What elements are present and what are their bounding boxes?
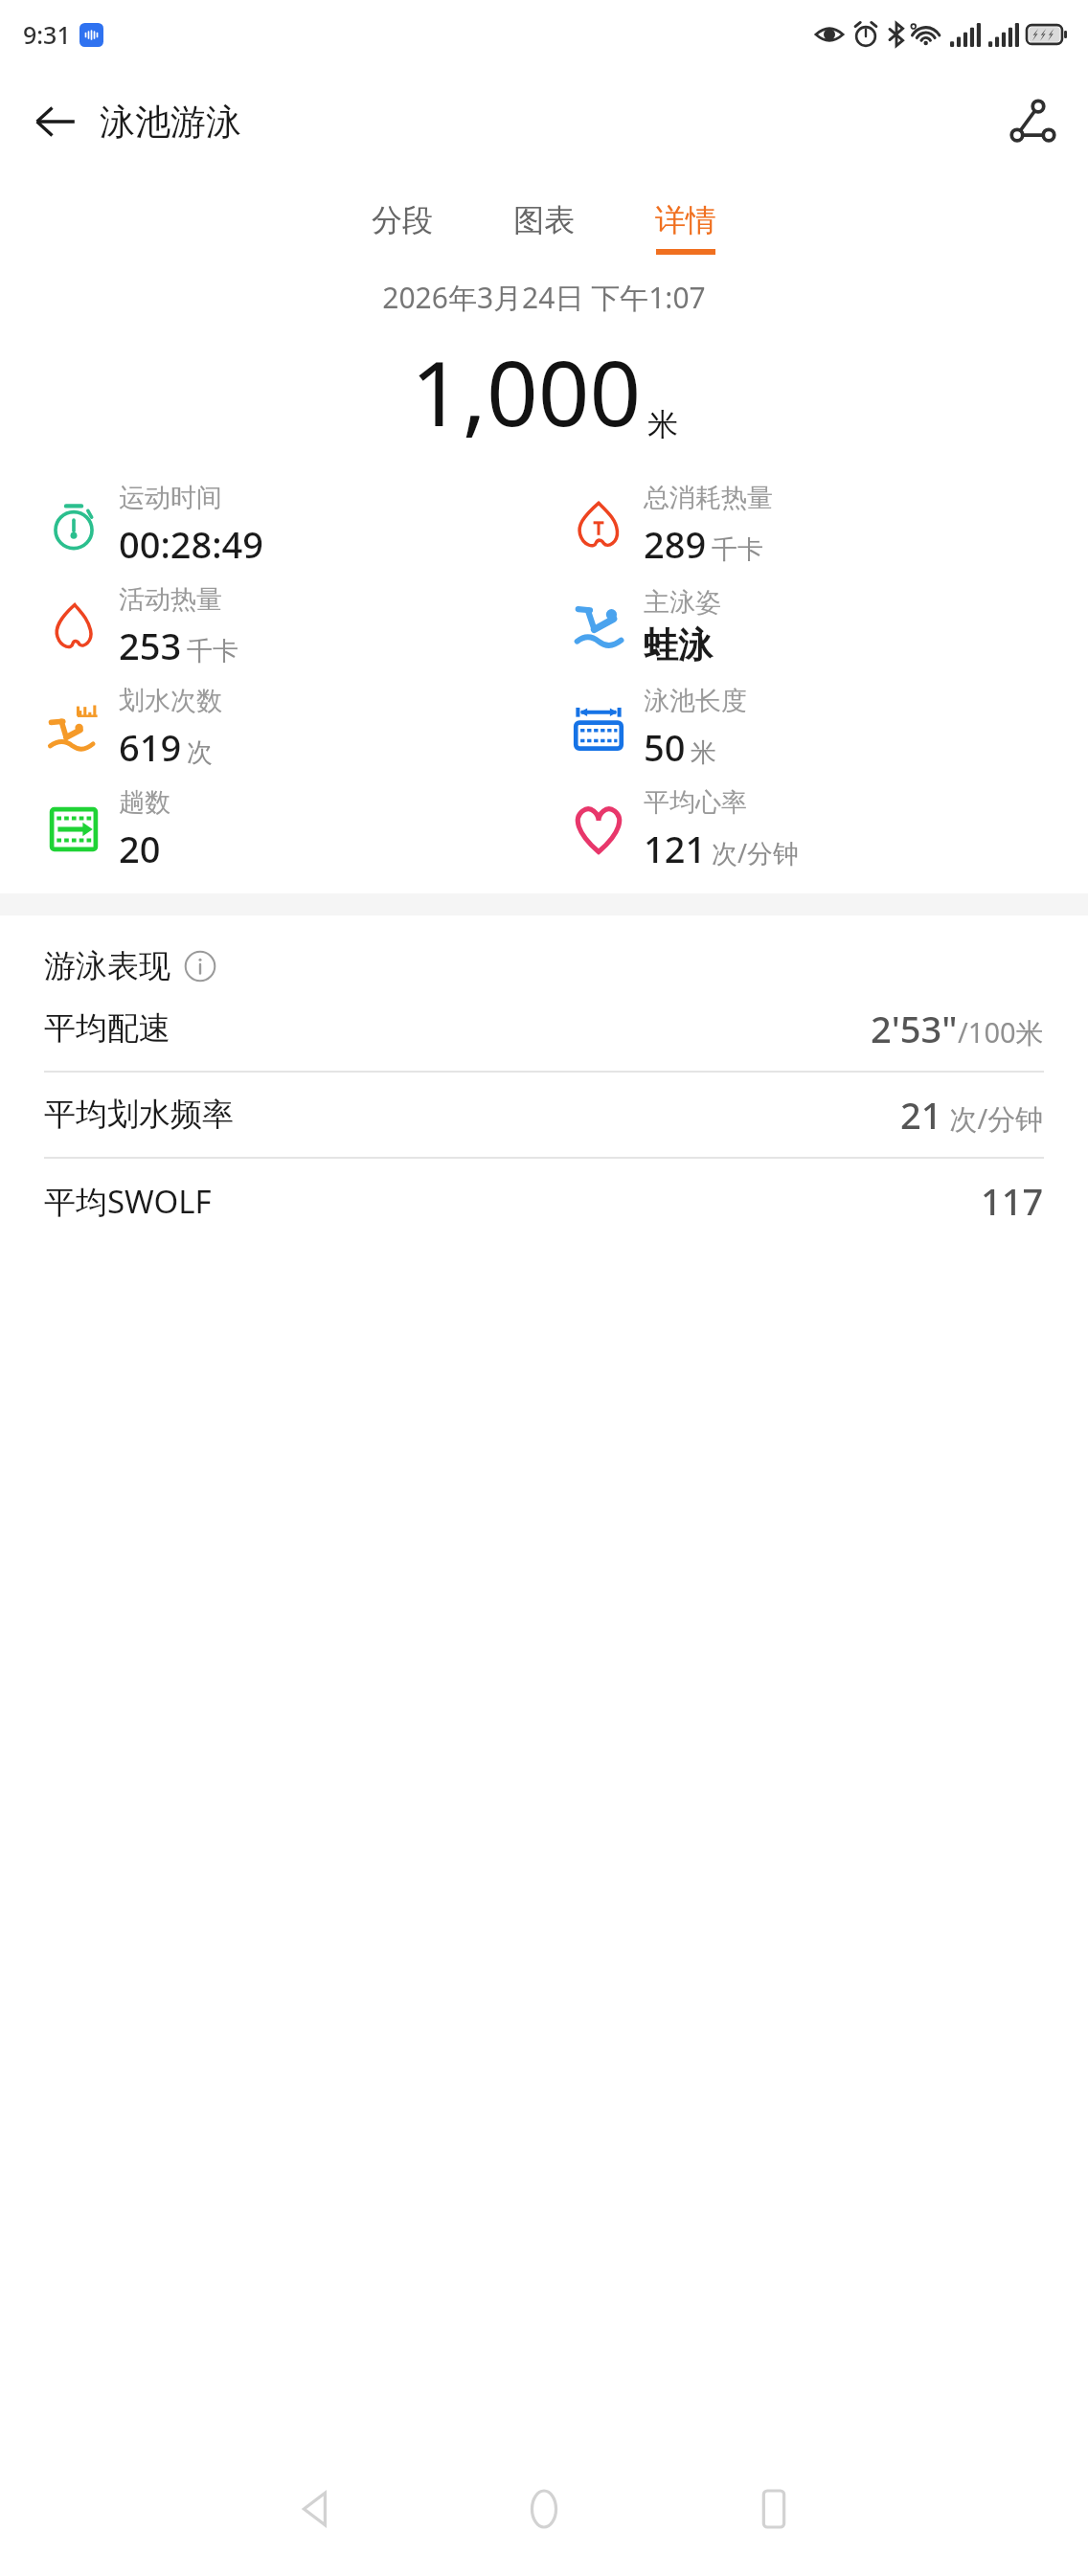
staticText: 20 — [119, 824, 161, 873]
button[interactable]: 主泳姿 — [569, 576, 1088, 677]
staticText: 米 — [691, 736, 716, 769]
staticText: 游泳表现 — [44, 946, 170, 986]
button[interactable]: 运动时间 — [44, 474, 544, 576]
staticText: 平均配速 — [44, 1008, 170, 1049]
button[interactable]: 平均划水频率 — [44, 1073, 1044, 1157]
button[interactable]: 趟数 — [44, 779, 544, 880]
staticText: 详情 — [655, 201, 716, 239]
staticText: 米 — [647, 405, 678, 443]
staticText: 2026年3月24日 下午1:07 — [382, 278, 706, 317]
staticText: 619 — [119, 722, 182, 772]
staticText: 活动热量 — [119, 583, 222, 616]
staticText: 平均SWOLF — [44, 1180, 212, 1223]
staticText: 1,000 — [411, 330, 642, 453]
staticText: 主泳姿 — [644, 586, 721, 619]
staticText: 总消耗热量 — [644, 482, 773, 514]
staticText: 泳池长度 — [644, 685, 747, 717]
staticText: 千卡 — [712, 533, 763, 566]
staticText: 趟数 — [119, 786, 170, 819]
button[interactable]: Home — [482, 2447, 606, 2571]
staticText: 次/分钟 — [712, 835, 800, 870]
staticText: 121 — [644, 824, 707, 873]
staticText: 50 — [644, 722, 686, 772]
button[interactable]: 平均配速 — [44, 986, 1044, 1071]
staticText: 划水次数 — [119, 685, 222, 717]
staticText: /100米 — [958, 1013, 1044, 1051]
button[interactable]: Recent apps — [712, 2447, 836, 2571]
staticText: 00:28:49 — [119, 519, 264, 569]
button[interactable]: 总消耗热量 — [569, 474, 1088, 576]
button[interactable]: 划水次数 — [44, 677, 544, 779]
staticText: 平均心率 — [644, 786, 747, 819]
button[interactable]: 图表 — [498, 195, 590, 260]
staticText: 分段 — [372, 201, 433, 239]
staticText: 253 — [119, 621, 182, 670]
staticText: 运动时间 — [119, 482, 222, 514]
staticText: 次/分钟 — [942, 1099, 1044, 1138]
staticText: 2'53" — [871, 1004, 958, 1053]
staticText: 117 — [981, 1176, 1044, 1226]
staticText: 泳池游泳 — [100, 100, 241, 145]
staticText: 平均划水频率 — [44, 1095, 234, 1135]
staticText: 图表 — [513, 201, 575, 239]
button[interactable]: 详情 — [640, 195, 732, 260]
staticText: 千卡 — [187, 635, 238, 667]
staticText: 蛙泳 — [644, 623, 713, 667]
staticText: 9:31 — [23, 18, 71, 51]
button[interactable]: 活动热量 — [44, 576, 544, 677]
button[interactable]: Share — [998, 87, 1067, 156]
button[interactable]: Back — [21, 87, 90, 156]
button[interactable]: 平均SWOLF — [44, 1159, 1044, 1243]
staticText: 次 — [187, 736, 213, 769]
button[interactable]: Back — [252, 2447, 376, 2571]
staticText: 21 — [900, 1090, 942, 1140]
staticText: 289 — [644, 519, 707, 569]
button[interactable]: 平均心率 — [569, 779, 1088, 880]
button[interactable]: 游泳表现 — [44, 946, 1088, 986]
button[interactable]: 分段 — [356, 195, 448, 260]
button[interactable]: 泳池长度 — [569, 677, 1088, 779]
